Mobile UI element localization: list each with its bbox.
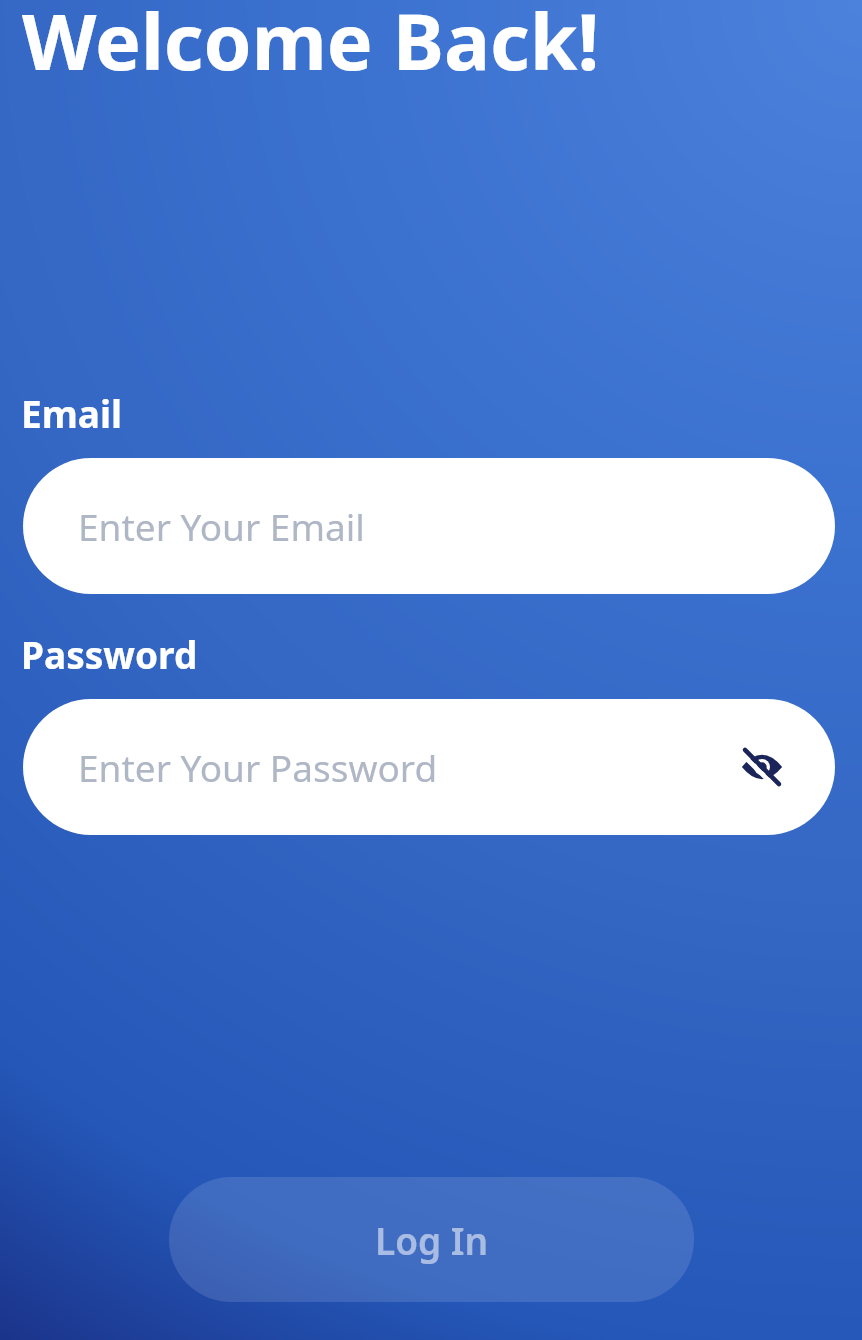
staticText: Enter Your Email [78,501,365,551]
staticText: Email [21,388,123,438]
staticText: Enter Your Password [78,742,438,792]
staticText: Welcome Back! [22,0,600,93]
button[interactable] [741,748,783,786]
staticText: Log In [375,1215,489,1265]
button[interactable]: Log In [169,1177,694,1302]
staticText: Password [21,629,198,679]
button[interactable]: Enter Your Email [23,458,835,594]
button[interactable]: Enter Your Password [23,699,835,835]
